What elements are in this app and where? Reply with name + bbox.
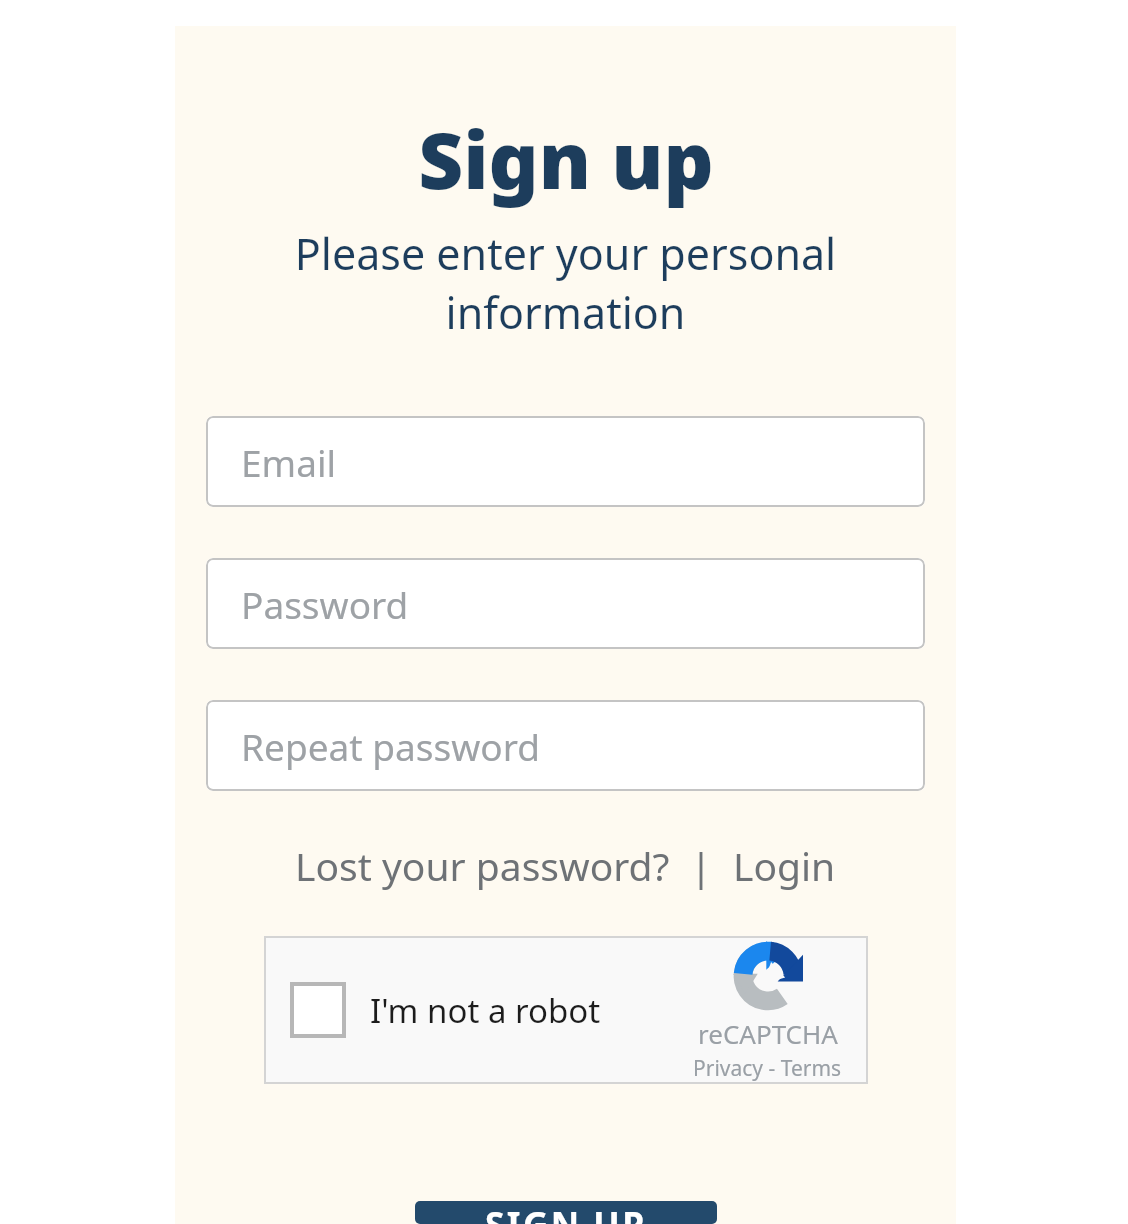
button[interactable]: SIGN UP [415,1201,717,1224]
button[interactable]: Password [206,558,925,649]
button[interactable]: Login [733,839,836,892]
staticText: | [670,839,733,892]
staticText: Lost your password? [295,839,670,892]
staticText: Privacy - Terms [693,1054,842,1083]
staticText: Login [733,839,836,892]
staticText: Password [241,579,409,629]
button[interactable]: Lost your password? [295,839,670,892]
staticText: SIGN UP [485,1201,647,1224]
button[interactable]: I'm not a robot [290,982,346,1038]
staticText: Please enter your personal information [175,224,956,342]
button[interactable]: Repeat password [206,700,925,791]
button[interactable]: Email [206,416,925,507]
staticText: Sign up [418,106,714,212]
staticText: reCAPTCHA [698,1016,838,1051]
other: reCAPTCHA logo [729,937,807,1015]
staticText: I'm not a robot [370,988,601,1033]
staticText: Repeat password [241,721,540,771]
staticText: Email [241,437,337,487]
